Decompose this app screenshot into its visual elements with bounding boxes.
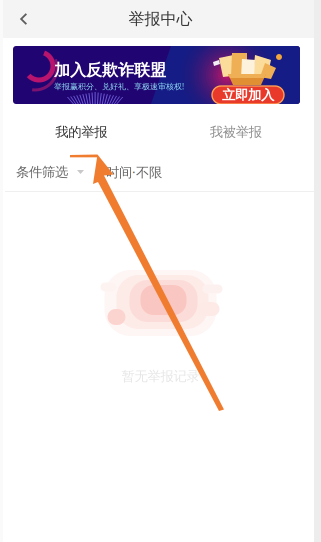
staticText: 暂无举报记录 [121,368,199,384]
staticText: 我的举报 [55,124,107,140]
staticText: 时间·不限 [106,163,162,181]
button[interactable]: 条件筛选 [16,153,84,191]
button[interactable]: 加入反欺诈联盟 [13,46,300,104]
staticText: 加入反欺诈联盟 [54,60,166,80]
button[interactable]: Back [6,0,40,38]
staticText: 举报中心 [128,9,192,29]
button[interactable]: 时间·不限 [106,153,162,191]
staticText: 立即加入 [222,87,274,103]
staticText: 我被举报 [210,124,262,140]
staticText: 条件筛选 [16,164,68,180]
staticText: 举报赢积分、兑好礼、享极速审核权! [54,81,184,92]
button[interactable]: 我被举报 [158,111,313,153]
button[interactable]: 我的举报 [4,111,158,153]
